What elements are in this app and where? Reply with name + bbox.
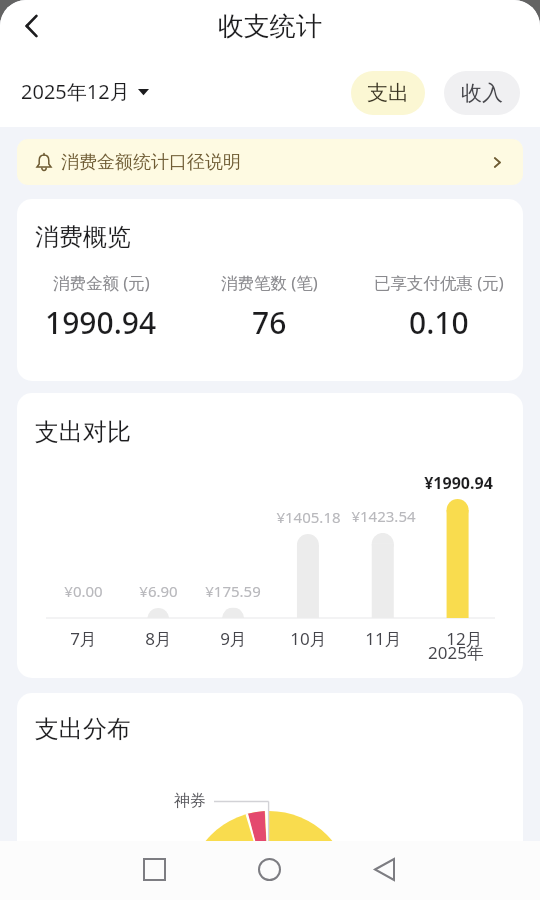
staticText: 2025年12月: [21, 78, 130, 105]
staticText: 2025年: [428, 641, 484, 664]
staticText: 支出对比: [35, 417, 131, 447]
staticText: 收入: [461, 80, 503, 106]
staticText: 11月: [365, 627, 402, 650]
staticText: 消费金额 (元): [53, 271, 150, 294]
staticText: ¥1423.54: [351, 506, 416, 526]
button[interactable]: 2025年12月: [21, 78, 149, 105]
button[interactable]: 收入: [444, 71, 520, 115]
staticText: ¥1405.18: [276, 507, 341, 527]
staticText: 76: [252, 302, 287, 343]
staticText: 消费概览: [35, 222, 131, 252]
staticText: 支出: [367, 80, 409, 106]
button[interactable]: Home: [241, 841, 298, 898]
staticText: 7月: [70, 627, 97, 650]
button[interactable]: 消费金额统计口径说明: [17, 139, 523, 185]
button[interactable]: Back: [9, 3, 55, 49]
staticText: 1990.94: [45, 302, 157, 343]
staticText: 9月: [220, 627, 247, 650]
staticText: 8月: [145, 627, 172, 650]
staticText: 10月: [290, 627, 327, 650]
staticText: 消费金额统计口径说明: [61, 151, 241, 174]
staticText: 消费笔数 (笔): [221, 271, 318, 294]
staticText: 0.10: [409, 302, 469, 343]
staticText: ¥6.90: [139, 581, 178, 601]
button[interactable]: Back: [356, 841, 413, 898]
staticText: 12月: [446, 627, 483, 650]
staticText: ¥1990.94: [424, 472, 493, 494]
staticText: 支出分布: [35, 714, 131, 744]
staticText: ¥0.00: [64, 581, 103, 601]
staticText: 收支统计: [218, 10, 322, 43]
button[interactable]: 支出: [351, 71, 425, 115]
staticText: ¥175.59: [205, 581, 261, 601]
staticText: 已享支付优惠 (元): [374, 271, 504, 294]
button[interactable]: Recent apps: [126, 841, 183, 898]
staticText: 神券: [174, 791, 206, 811]
